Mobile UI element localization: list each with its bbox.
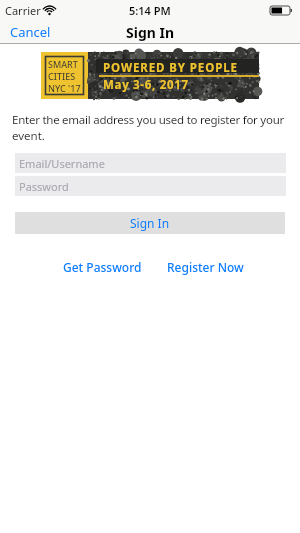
- staticText: Carrier: [5, 3, 41, 18]
- staticText: 5:14 PM: [129, 3, 171, 18]
- staticText: NYC '17: [48, 82, 81, 94]
- staticText: Sign In: [126, 23, 175, 42]
- staticText: Email/Username: [19, 156, 105, 171]
- staticText: Password: [19, 179, 69, 194]
- staticText: May 3-6, 2017: [103, 77, 189, 93]
- button[interactable]: Cancel: [10, 23, 51, 41]
- button[interactable]: Sign In: [15, 212, 285, 234]
- button[interactable]: Register Now: [167, 259, 244, 275]
- button[interactable]: Get Password: [63, 259, 142, 275]
- staticText: CITIES: [48, 70, 76, 82]
- staticText: Register Now: [167, 259, 244, 275]
- staticText: Cancel: [10, 23, 51, 41]
- staticText: Sign In: [130, 215, 170, 231]
- staticText: Enter the email address you used to regi…: [12, 112, 285, 128]
- button[interactable]: Email/Username: [15, 153, 286, 173]
- staticText: Get Password: [63, 259, 142, 275]
- staticText: POWERED BY PEOPLE: [103, 60, 238, 76]
- staticText: SMART: [48, 58, 78, 70]
- staticText: event.: [12, 128, 45, 144]
- button[interactable]: Password: [15, 176, 286, 196]
